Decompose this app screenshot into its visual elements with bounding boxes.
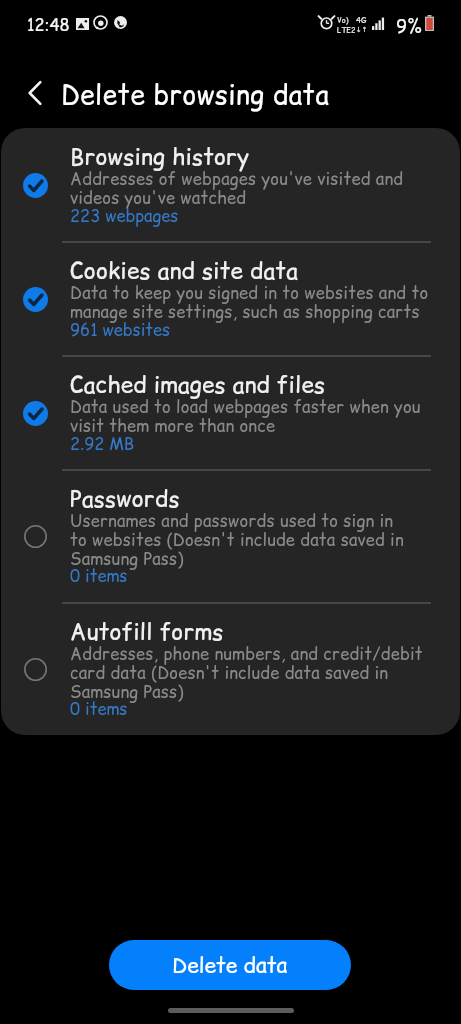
staticText: 9% — [396, 14, 422, 39]
staticText: LTE2 — [337, 25, 356, 35]
staticText: Passwords — [70, 483, 180, 514]
button[interactable]: Passwords — [1, 470, 460, 603]
button[interactable]: Cached images and files — [1, 356, 460, 470]
staticText: Delete data — [172, 951, 288, 980]
button[interactable]: Browsing history — [1, 128, 460, 242]
button[interactable]: Back — [21, 79, 49, 107]
staticText: 2.92 MB — [70, 433, 135, 456]
staticText: Cached images and files — [70, 369, 326, 400]
staticText: ↓↑ — [356, 26, 368, 34]
staticText: Browsing history — [70, 141, 250, 172]
staticText: Addresses, phone numbers, and credit/deb… — [70, 643, 423, 704]
staticText: Usernames and passwords used to sign in … — [70, 510, 404, 571]
staticText: Addresses of webpages you've visited and… — [70, 168, 404, 210]
button[interactable]: Delete data — [109, 940, 351, 990]
staticText: Data to keep you signed in to websites a… — [70, 282, 429, 324]
staticText: Data used to load webpages faster when y… — [70, 396, 421, 438]
staticText: 223 webpages — [70, 205, 179, 228]
staticText: 12:48 — [27, 14, 70, 37]
button[interactable]: Cookies and site data — [1, 242, 460, 356]
staticText: 961 websites — [70, 319, 171, 342]
staticText: 0 items — [70, 698, 128, 721]
staticText: 4G — [356, 15, 367, 26]
staticText: Delete browsing data — [61, 77, 330, 113]
staticText: Cookies and site data — [70, 255, 298, 286]
staticText: Vo) — [337, 15, 349, 25]
button[interactable]: Autofill forms — [1, 603, 460, 735]
staticText: 0 items — [70, 565, 128, 588]
staticText: Autofill forms — [70, 616, 224, 647]
